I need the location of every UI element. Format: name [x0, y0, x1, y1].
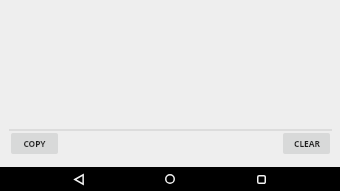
button[interactable]: CLEAR — [283, 133, 330, 154]
button[interactable]: Back — [67, 167, 91, 191]
staticText: CLEAR — [294, 138, 320, 149]
staticText: COPY — [23, 138, 46, 149]
button[interactable]: Home — [158, 167, 182, 191]
button[interactable]: COPY — [11, 133, 58, 154]
button[interactable]: Recent apps — [249, 167, 273, 191]
